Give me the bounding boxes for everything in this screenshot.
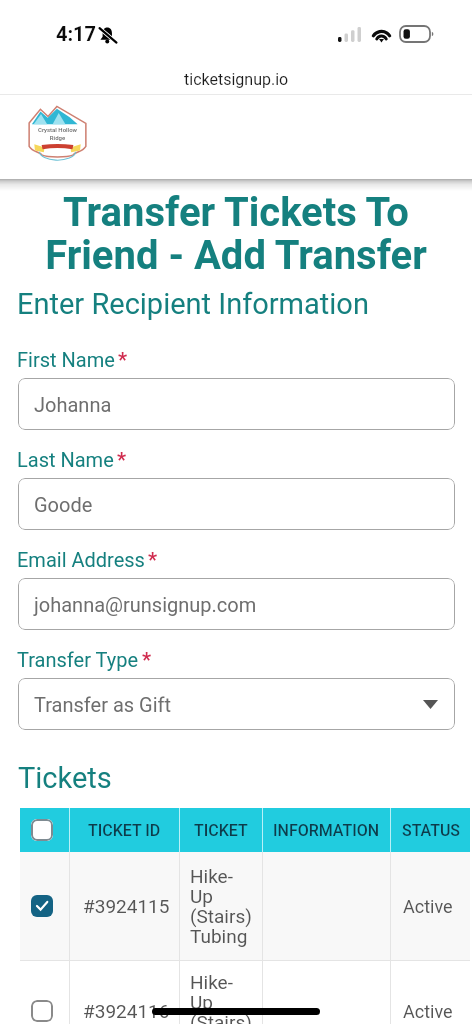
staticText: Johanna [34, 393, 112, 416]
staticText: * [118, 348, 128, 371]
staticText: Last Name [17, 448, 114, 471]
staticText: TICKET [194, 821, 248, 840]
staticText: * [142, 648, 152, 671]
button[interactable]: Transfer as Gift [18, 678, 455, 730]
staticText: Enter Recipient Information [17, 287, 369, 321]
staticText: INFORMATION [273, 821, 380, 840]
staticText: Email Address [17, 548, 145, 571]
staticText: 4:17 [56, 22, 97, 45]
staticText: Transfer Type [17, 648, 139, 671]
staticText: Goode [34, 493, 93, 516]
staticText: #3924115 [83, 895, 170, 917]
staticText: ticketsignup.io [184, 70, 289, 89]
staticText: TICKET ID [88, 821, 161, 840]
button[interactable]: Ticket selected [31, 895, 53, 917]
staticText: First Name [17, 348, 115, 371]
staticText: #3924116 [83, 1000, 170, 1022]
button[interactable]: Select ticket [31, 1000, 53, 1022]
button[interactable]: Select all tickets [31, 819, 53, 841]
staticText: Transfer as Gift [34, 693, 172, 716]
staticText: Transfer Tickets To Friend - Add Transfe… [4, 189, 468, 279]
button[interactable]: Goode [18, 478, 455, 530]
staticText: Crystal Hollow Ridge [27, 126, 88, 142]
staticText: Hike- Up (Stairs) [190, 971, 252, 1024]
staticText: STATUS [402, 821, 460, 840]
staticText: Hike- Up (Stairs) Tubing [190, 865, 252, 947]
staticText: Active [403, 1001, 453, 1022]
staticText: Tickets [18, 761, 112, 795]
button[interactable]: johanna@runsignup.com [18, 578, 455, 630]
staticText: johanna@runsignup.com [34, 593, 257, 616]
staticText: Active [403, 896, 453, 917]
button[interactable]: Johanna [18, 378, 455, 430]
staticText: * [117, 448, 127, 471]
staticText: * [148, 548, 158, 571]
